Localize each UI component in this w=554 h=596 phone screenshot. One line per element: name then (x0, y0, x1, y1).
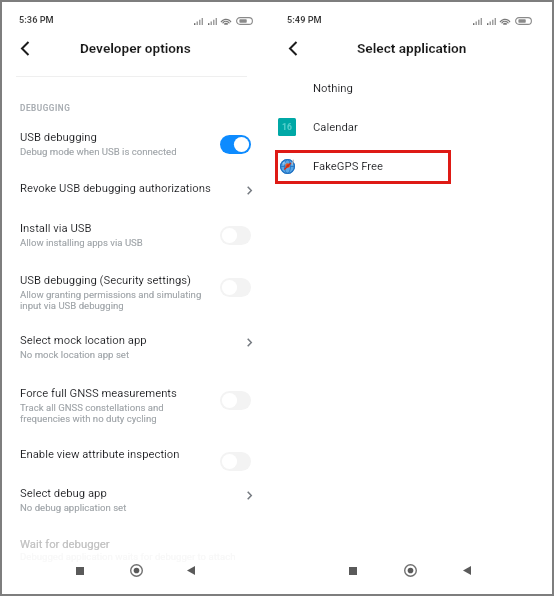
button[interactable]: Nothing (277, 72, 554, 104)
staticText: Calendar (313, 121, 358, 134)
button[interactable]: 16 (277, 111, 554, 143)
staticText: 5:36 PM (19, 14, 54, 25)
staticText: 16 (282, 122, 292, 132)
staticText: FakeGPS Free (313, 160, 383, 173)
button[interactable]: Recents (64, 555, 96, 587)
button[interactable]: FakeGPS Free (277, 150, 554, 182)
staticText: Revoke USB debugging authorizations (20, 182, 211, 195)
staticText: Install via USB (20, 222, 92, 235)
staticText: Allow installing apps via USB (20, 237, 143, 248)
button[interactable]: Toggle (220, 226, 251, 245)
staticText: 5:49 PM (287, 14, 322, 25)
button[interactable]: Enable view attribute inspection (0, 445, 277, 479)
button[interactable]: Toggle (220, 391, 251, 410)
button[interactable]: Toggle (220, 135, 251, 154)
button[interactable]: Select debug app (0, 484, 277, 524)
button[interactable]: Toggle (220, 452, 251, 471)
button[interactable]: Wait for debugger (0, 535, 277, 569)
staticText: Select mock location app (20, 334, 147, 347)
staticText: Wait for debugger (20, 538, 110, 551)
button[interactable]: Back (451, 554, 483, 586)
staticText: No debug application set (20, 502, 127, 513)
staticText: USB debugging (20, 131, 97, 144)
button[interactable]: USB debugging (0, 128, 277, 168)
staticText: Select application (357, 40, 467, 56)
button[interactable]: Home (394, 554, 426, 586)
button[interactable]: Back (175, 554, 207, 586)
button[interactable]: Open (239, 485, 259, 505)
staticText: Debug mode when USB is connected (20, 146, 177, 157)
staticText: Force full GNSS measurements (20, 387, 177, 400)
button[interactable]: Back (11, 34, 39, 62)
button[interactable]: Recents (337, 555, 369, 587)
button[interactable]: Revoke USB debugging authorizations (0, 179, 277, 213)
button[interactable]: Back (279, 34, 307, 62)
staticText: DEBUGGING (20, 103, 71, 113)
staticText: Nothing (313, 82, 353, 95)
button[interactable]: Force full GNSS measurements (0, 384, 277, 434)
staticText: No mock location app set (20, 349, 130, 360)
button[interactable]: Toggle (220, 278, 251, 297)
button[interactable]: Install via USB (0, 219, 277, 259)
button[interactable]: USB debugging (Security settings) (0, 271, 277, 321)
staticText: Track all GNSS constellations and freque… (20, 402, 164, 424)
staticText: Developer options (80, 40, 191, 56)
button[interactable]: Select mock location app (0, 331, 277, 371)
button[interactable]: Home (120, 554, 152, 586)
staticText: Enable view attribute inspection (20, 448, 180, 461)
staticText: Allow granting permissions and simulatin… (20, 289, 202, 311)
button[interactable]: Open (239, 332, 259, 352)
staticText: Select debug app (20, 487, 107, 500)
staticText: USB debugging (Security settings) (20, 274, 192, 287)
button[interactable]: Open (239, 180, 259, 200)
